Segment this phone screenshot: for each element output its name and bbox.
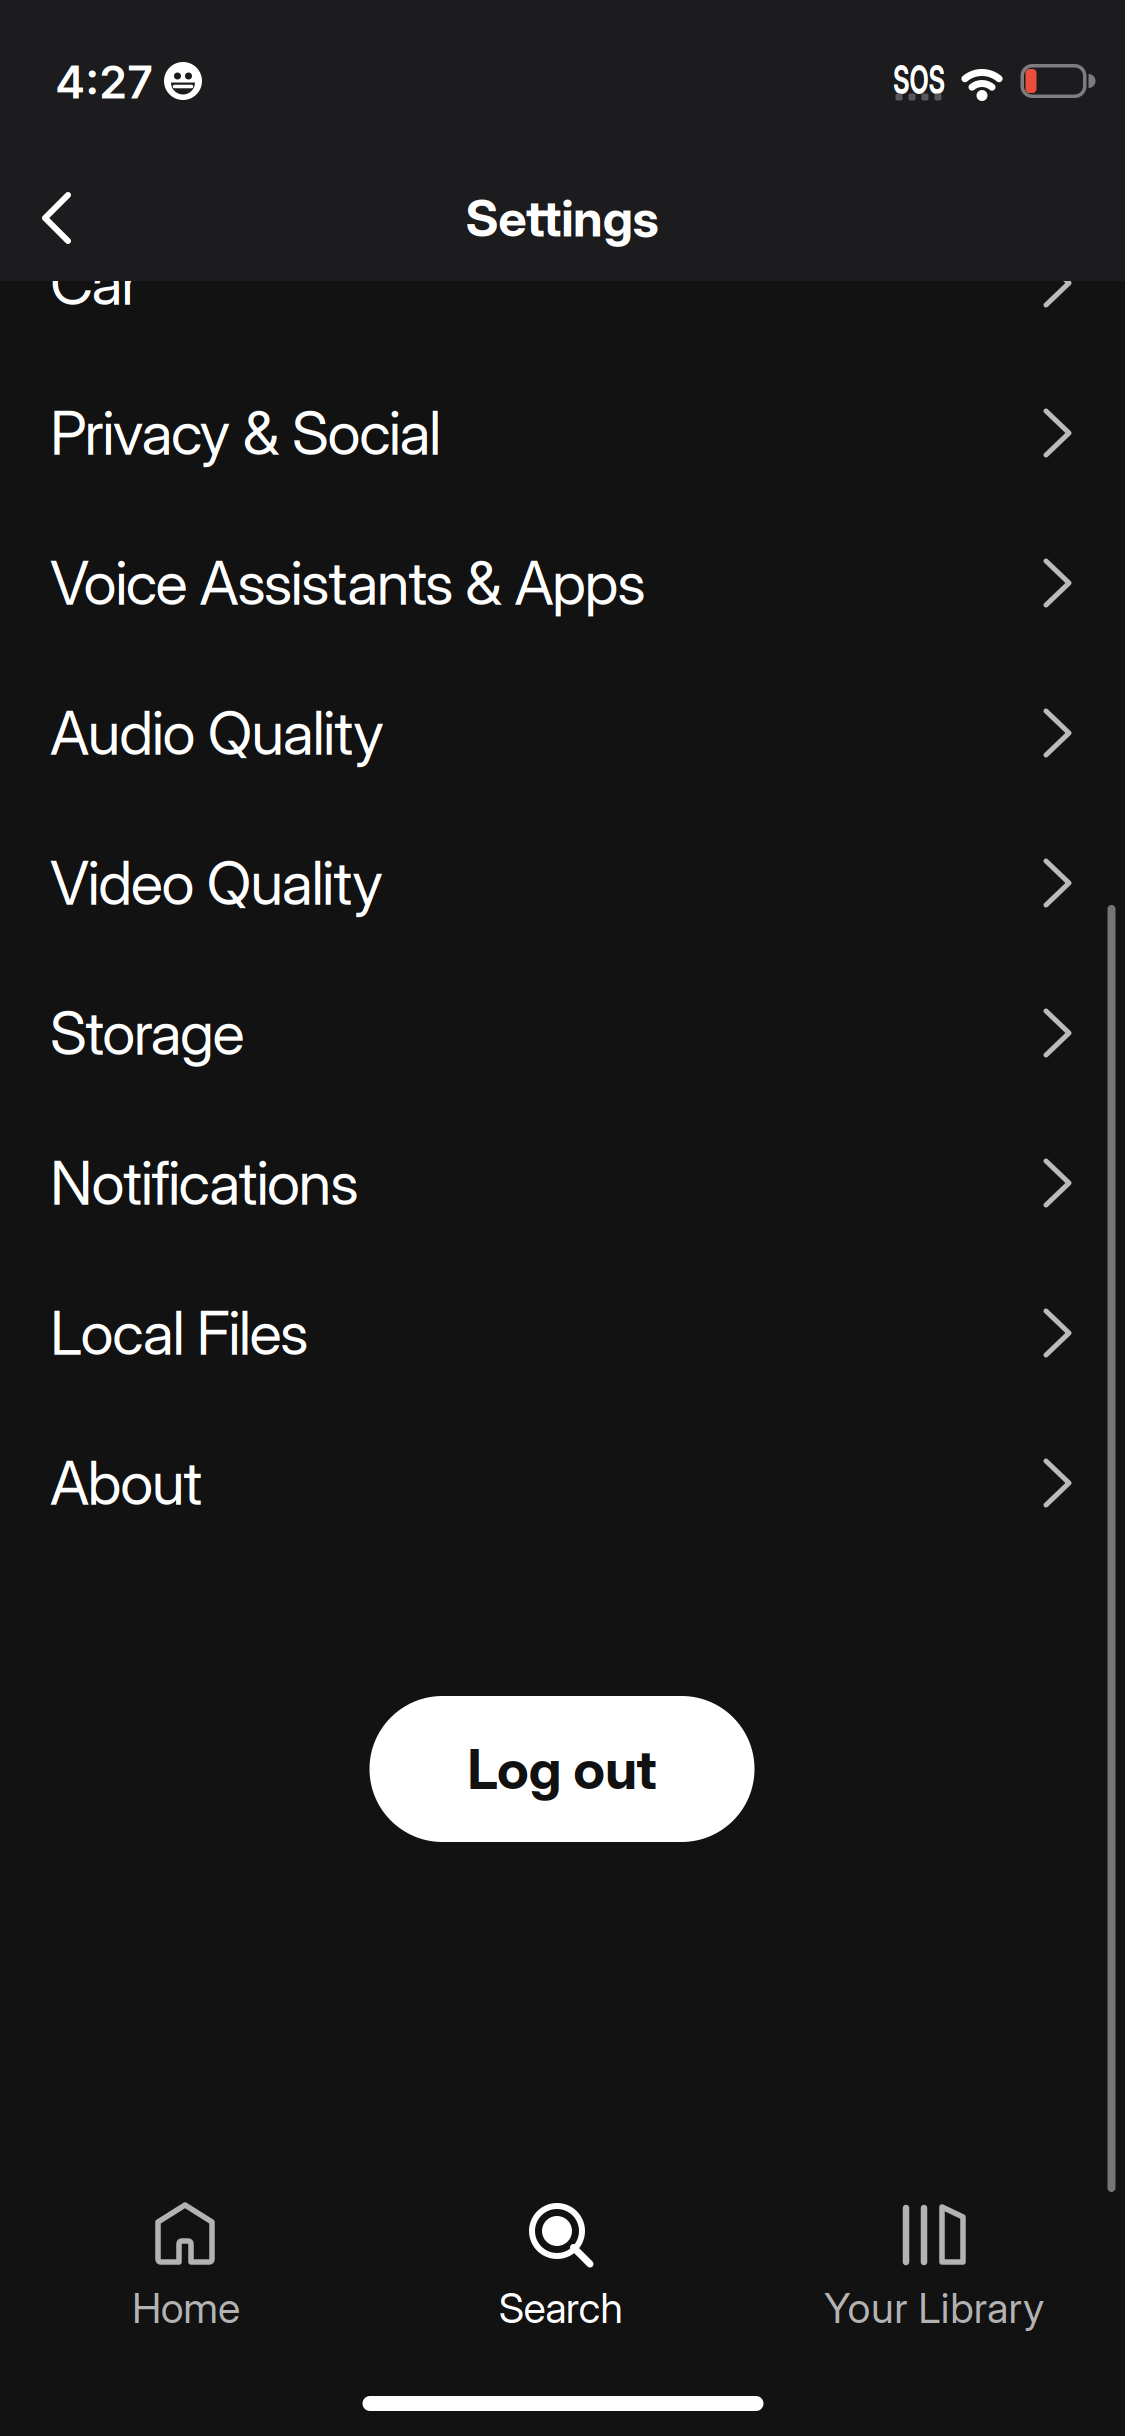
staticText: Search — [499, 2283, 623, 2333]
button[interactable]: Local Files — [0, 1258, 1125, 1408]
button[interactable]: Notifications — [0, 1108, 1125, 1258]
button[interactable]: Storage — [0, 958, 1125, 1108]
button[interactable]: Log out — [369, 1696, 754, 1842]
staticText: Log out — [467, 1736, 657, 1802]
staticText: Local Files — [50, 1297, 308, 1369]
staticText: SOS — [879, 57, 958, 103]
button[interactable]: About — [0, 1408, 1125, 1558]
staticText: Audio Quality — [50, 697, 384, 769]
staticText: Settings — [465, 187, 658, 249]
staticText: 4:27 — [55, 55, 153, 109]
button[interactable]: Car — [0, 208, 1125, 358]
staticText: Video Quality — [50, 847, 383, 919]
button[interactable]: Audio Quality — [0, 658, 1125, 808]
button[interactable]: Back — [22, 172, 92, 264]
button[interactable]: Video Quality — [0, 808, 1125, 958]
staticText: Storage — [50, 997, 245, 1069]
button[interactable]: Home — [21, 2191, 351, 2341]
staticText: Notifications — [50, 1147, 358, 1219]
staticText: Car — [50, 247, 140, 319]
button[interactable]: Voice Assistants & Apps — [0, 508, 1125, 658]
staticText: Voice Assistants & Apps — [50, 547, 645, 619]
button[interactable]: Privacy & Social — [0, 358, 1125, 508]
staticText: Privacy & Social — [50, 397, 441, 469]
button[interactable]: Search — [396, 2191, 726, 2341]
staticText: Home — [132, 2283, 240, 2333]
staticText: About — [50, 1447, 202, 1519]
staticText: Your Library — [824, 2283, 1044, 2333]
button[interactable]: Your Library — [769, 2191, 1099, 2341]
